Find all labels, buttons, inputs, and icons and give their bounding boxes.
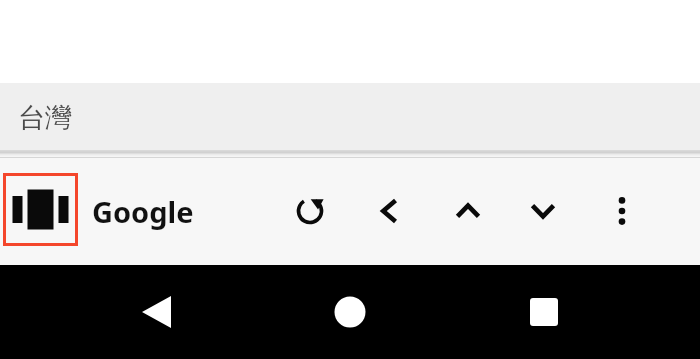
button[interactable]: Home	[320, 282, 380, 342]
staticText: 台灣	[18, 101, 72, 135]
button[interactable]: Reader view	[3, 173, 78, 246]
button[interactable]: Scroll up	[442, 185, 494, 237]
button[interactable]: Refresh	[284, 185, 336, 237]
button[interactable]: More options	[596, 185, 648, 237]
button[interactable]: Back	[127, 282, 187, 342]
button[interactable]: Previous	[363, 185, 415, 237]
button[interactable]: Scroll down	[517, 185, 569, 237]
button[interactable]: Recent apps	[514, 282, 574, 342]
staticText: Google	[92, 192, 194, 231]
button[interactable]: Google	[92, 157, 222, 265]
